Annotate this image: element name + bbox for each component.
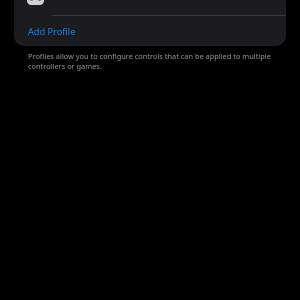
other: Game controller — [27, 0, 44, 5]
staticText: Add Profile — [28, 25, 76, 38]
button[interactable]: Add Profile — [14, 16, 286, 46]
staticText: Profiles allow you to configure controls… — [28, 51, 278, 71]
button[interactable]: Game controller — [14, 0, 286, 15]
